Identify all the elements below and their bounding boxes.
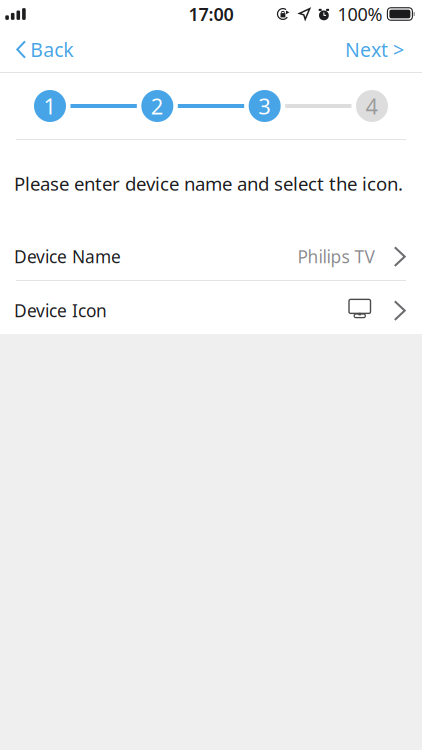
staticText: Device Icon [14,299,107,322]
staticText: 100% [337,2,382,26]
button[interactable]: Device Name [0,227,422,280]
staticText: 1 [43,91,56,121]
button[interactable]: Next > [331,27,422,71]
button[interactable]: Back [0,27,87,71]
staticText: Philips TV [297,245,374,268]
staticText: 2 [151,91,164,121]
button[interactable]: Device Icon [0,281,422,334]
staticText: Please enter device name and select the … [14,171,403,196]
staticText: Next > [345,37,404,62]
staticText: Back [30,37,73,62]
staticText: 3 [258,91,271,121]
staticText: Device Name [14,245,121,268]
staticText: 17:00 [188,2,233,26]
staticText: 4 [365,91,378,121]
